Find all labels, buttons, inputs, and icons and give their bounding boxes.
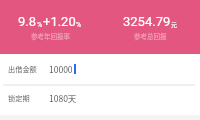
staticText: % [76, 21, 82, 29]
staticText: 9.8 [18, 14, 37, 29]
staticText: % [37, 21, 43, 29]
staticText: 出借金额 [8, 64, 37, 74]
button[interactable]: 锁定期 [0, 86, 200, 110]
staticText: 元 [171, 20, 178, 29]
button[interactable]: 出借金额 [0, 54, 200, 84]
staticText: 3254.79 [123, 14, 171, 29]
staticText: 锁定期 [8, 93, 30, 103]
staticText: 参考总回报 [134, 31, 167, 40]
staticText: 1080天 [49, 92, 77, 104]
staticText: 10000 [49, 63, 73, 75]
staticText: 参考年回报率 [31, 31, 70, 40]
staticText: +1.20 [43, 14, 76, 29]
